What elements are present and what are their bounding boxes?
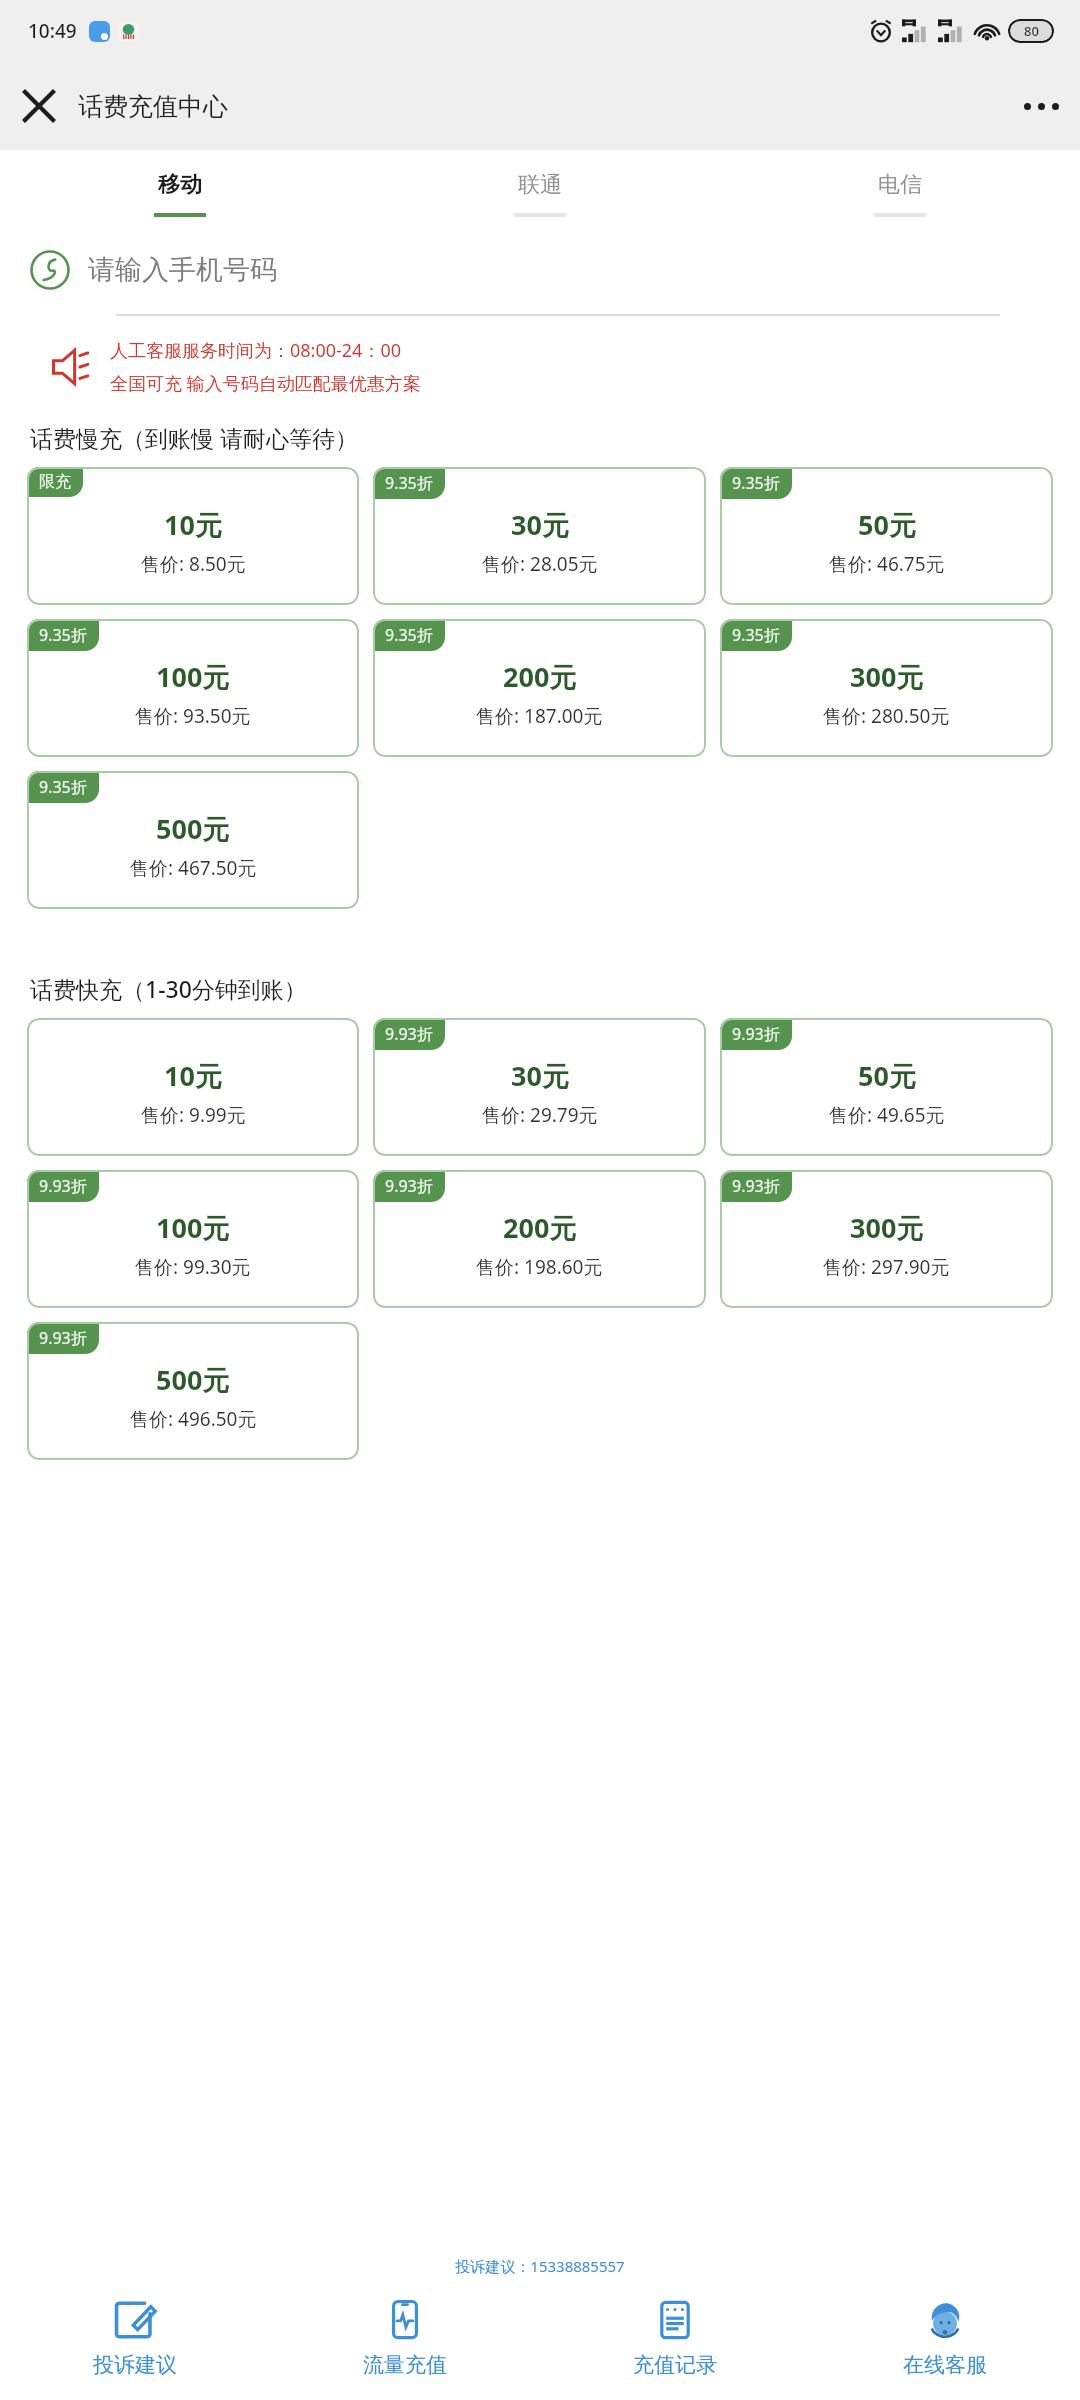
button[interactable]: 9.93折: [720, 1018, 1053, 1156]
staticText: 100元: [156, 1209, 230, 1246]
staticText: 10元: [164, 506, 222, 543]
staticText: 投诉建议：15338885557: [0, 2256, 1080, 2276]
button[interactable]: 9.35折: [373, 619, 706, 757]
button[interactable]: 9.35折: [720, 619, 1053, 757]
staticText: 300元: [850, 1209, 924, 1246]
staticText: 9.35折: [39, 776, 87, 798]
staticText: 投诉建议: [93, 2352, 177, 2378]
staticText: 9.93折: [39, 1175, 87, 1197]
staticText: 10:49: [28, 18, 77, 44]
staticText: 500元: [156, 1361, 230, 1398]
button[interactable]: More options: [1002, 67, 1080, 145]
staticText: 售价: 93.50元: [135, 703, 251, 729]
staticText: 30元: [511, 1057, 569, 1094]
button[interactable]: 9.93折: [27, 1170, 359, 1308]
button[interactable]: 9.93折: [720, 1170, 1053, 1308]
button[interactable]: 投诉建议: [0, 2292, 270, 2384]
staticText: 请输入手机号码: [88, 253, 277, 287]
staticText: 300元: [850, 658, 924, 695]
staticText: 10元: [164, 1057, 222, 1094]
staticText: 话费充值中心: [78, 91, 228, 122]
staticText: 售价: 297.90元: [823, 1254, 950, 1280]
staticText: 售价: 49.65元: [829, 1102, 945, 1128]
staticText: 9.35折: [385, 472, 433, 494]
staticText: 流量充值: [363, 2352, 447, 2378]
button[interactable]: 10元: [27, 1018, 359, 1156]
staticText: 9.93折: [385, 1023, 433, 1045]
staticText: 售价: 187.00元: [476, 703, 603, 729]
staticText: 9.35折: [732, 472, 780, 494]
button[interactable]: 充值记录: [540, 2292, 810, 2384]
staticText: 售价: 8.50元: [141, 551, 246, 577]
staticText: 话费慢充（到账慢 请耐心等待）: [30, 422, 358, 453]
staticText: 9.93折: [732, 1023, 780, 1045]
button[interactable]: 9.93折: [373, 1018, 706, 1156]
button[interactable]: 联通: [360, 150, 720, 238]
staticText: 售价: 99.30元: [135, 1254, 251, 1280]
staticText: 在线客服: [903, 2352, 987, 2378]
button[interactable]: 9.93折: [27, 1322, 359, 1460]
staticText: 售价: 29.79元: [482, 1102, 598, 1128]
staticText: 200元: [503, 1209, 577, 1246]
staticText: 9.35折: [385, 624, 433, 646]
staticText: 联通: [518, 171, 562, 199]
staticText: 话费快充（1-30分钟到账）: [30, 973, 307, 1004]
staticText: 80: [1024, 22, 1039, 40]
staticText: 500元: [156, 810, 230, 847]
staticText: 9.93折: [732, 1175, 780, 1197]
staticText: 电信: [878, 171, 922, 199]
staticText: 全国可充 输入号码自动匹配最优惠方案: [110, 371, 421, 396]
staticText: 售价: 467.50元: [130, 855, 257, 881]
staticText: 售价: 280.50元: [823, 703, 950, 729]
button[interactable]: 9.35折: [373, 467, 706, 605]
staticText: 移动: [158, 171, 202, 199]
button[interactable]: 9.35折: [27, 619, 359, 757]
staticText: 售价: 198.60元: [476, 1254, 603, 1280]
staticText: 200元: [503, 658, 577, 695]
staticText: 人工客服服务时间为：08:00-24：00: [110, 338, 401, 363]
staticText: 9.93折: [39, 1327, 87, 1349]
button[interactable]: 9.35折: [720, 467, 1053, 605]
staticText: 售价: 9.99元: [141, 1102, 246, 1128]
button[interactable]: Close: [0, 67, 78, 145]
staticText: 9.35折: [732, 624, 780, 646]
button[interactable]: 限充: [27, 467, 359, 605]
staticText: 限充: [39, 472, 71, 492]
button[interactable]: 9.35折: [27, 771, 359, 909]
button[interactable]: 移动: [0, 150, 360, 238]
staticText: 30元: [511, 506, 569, 543]
button[interactable]: 9.93折: [373, 1170, 706, 1308]
staticText: 9.35折: [39, 624, 87, 646]
staticText: 售价: 46.75元: [829, 551, 945, 577]
staticText: 50元: [858, 506, 916, 543]
staticText: 售价: 496.50元: [130, 1406, 257, 1432]
staticText: 100元: [156, 658, 230, 695]
button[interactable]: 在线客服: [810, 2292, 1080, 2384]
button[interactable]: 电信: [720, 150, 1080, 238]
staticText: 9.93折: [385, 1175, 433, 1197]
staticText: 50元: [858, 1057, 916, 1094]
staticText: 售价: 28.05元: [482, 551, 598, 577]
staticText: 充值记录: [633, 2352, 717, 2378]
button[interactable]: 流量充值: [270, 2292, 540, 2384]
